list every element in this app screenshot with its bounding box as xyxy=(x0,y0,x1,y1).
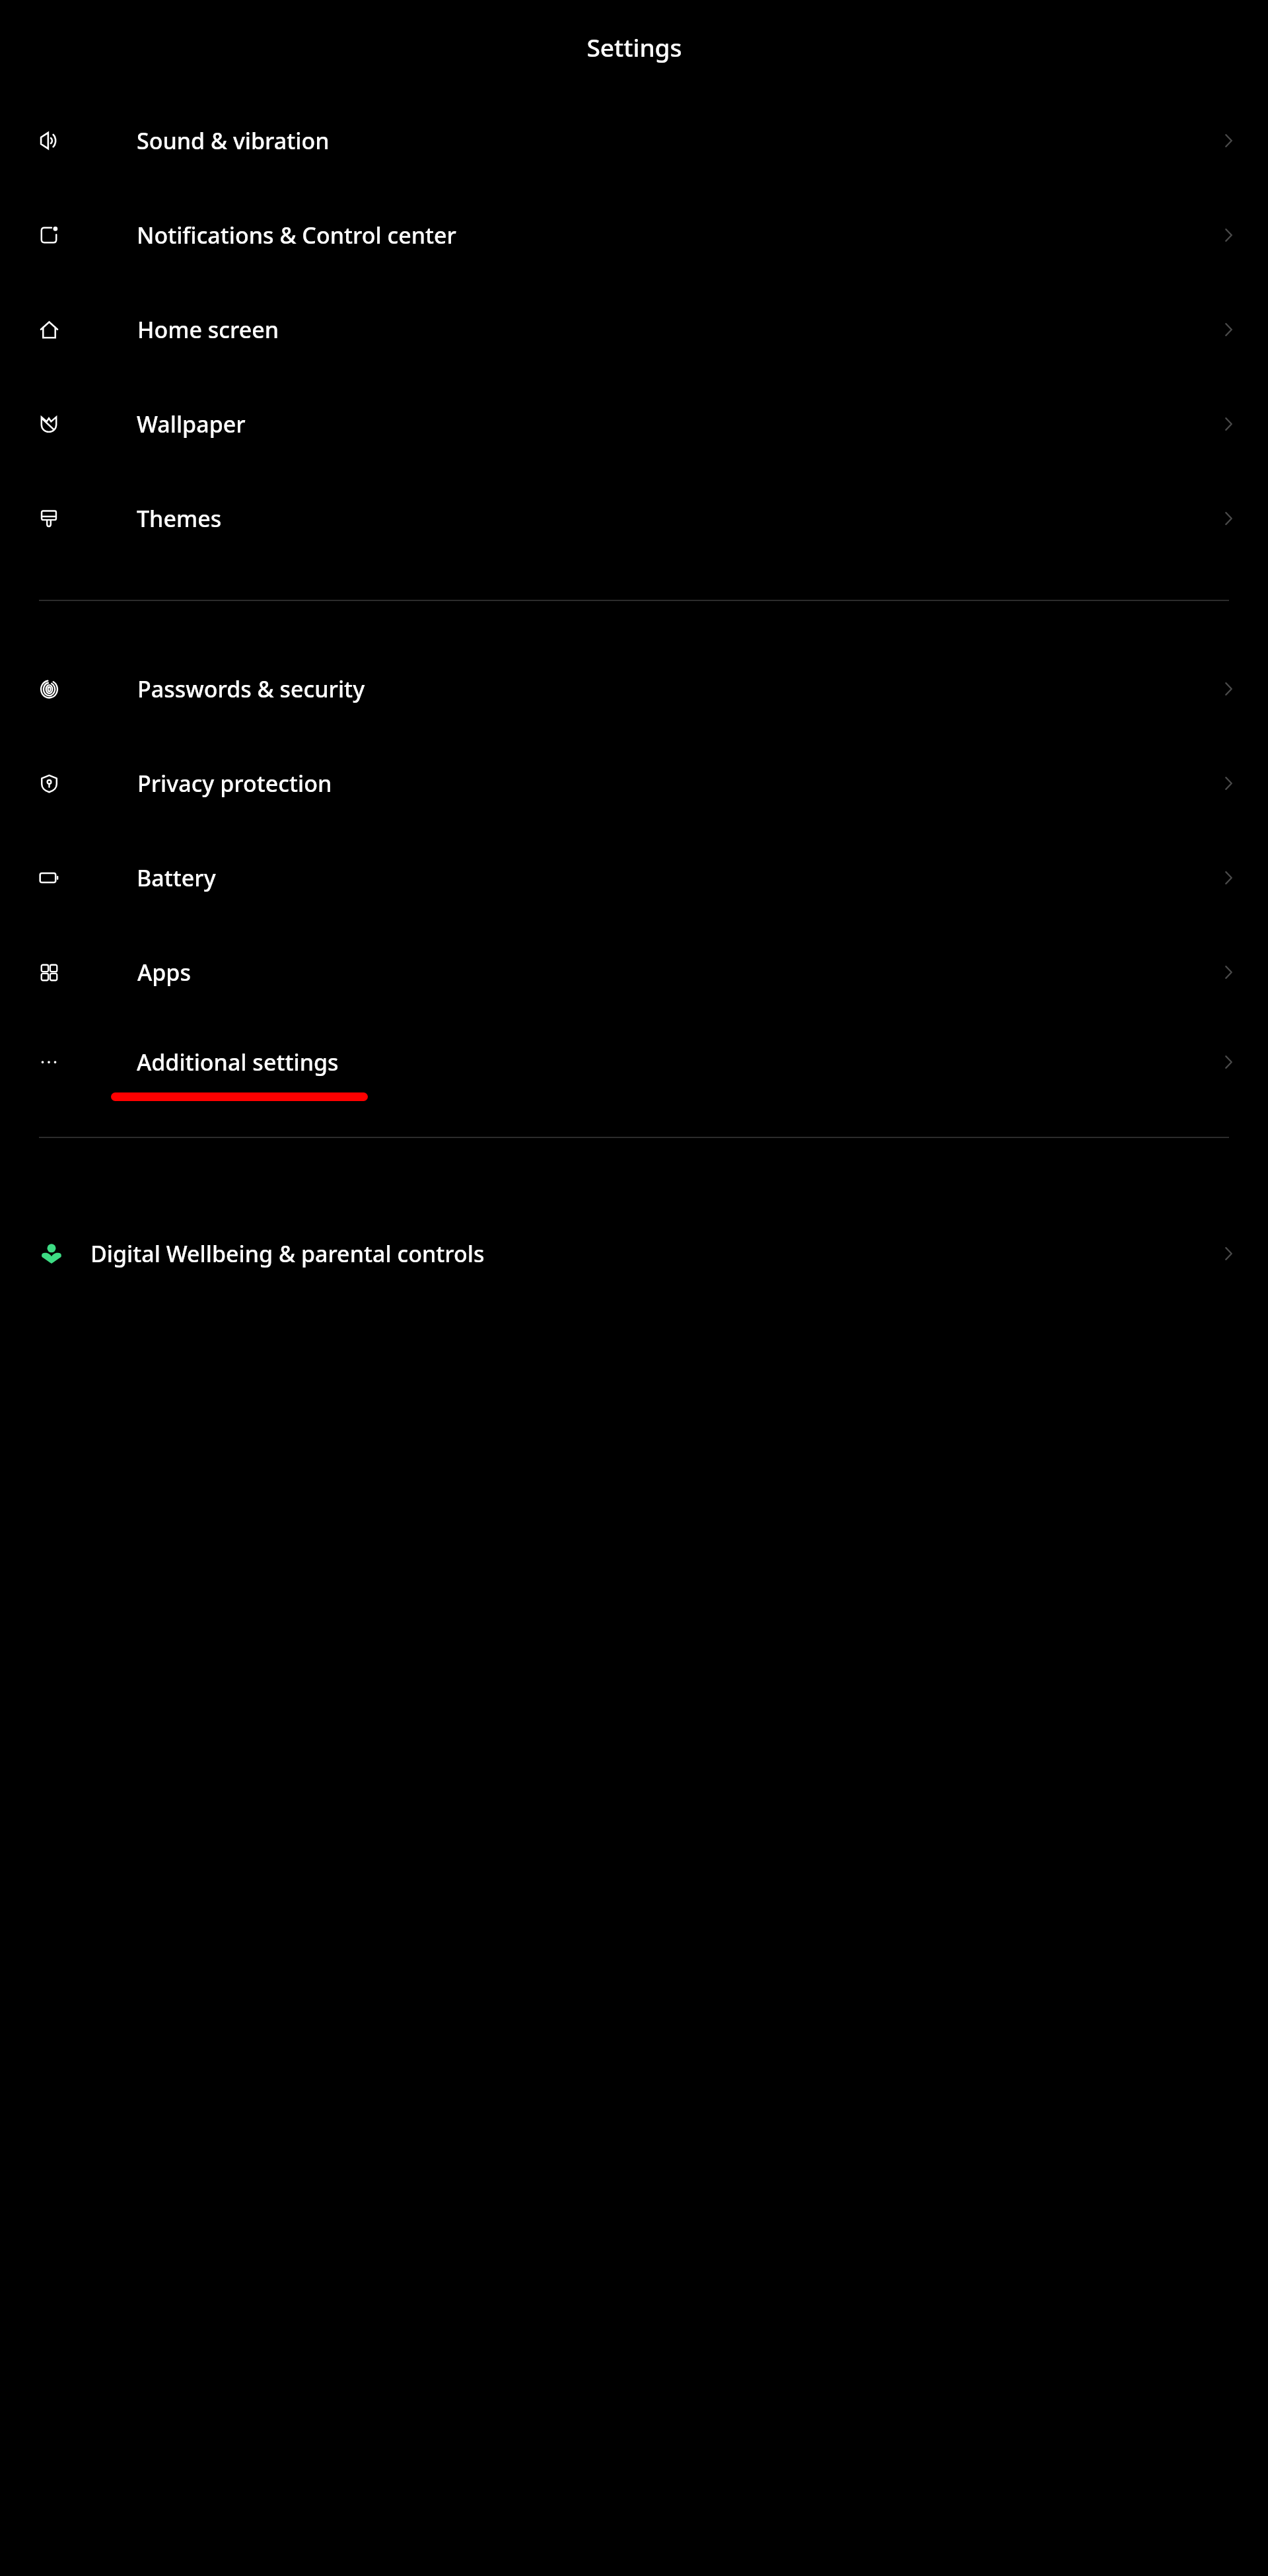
button[interactable]: Passwords & security xyxy=(0,666,1268,712)
other: Open Passwords & security xyxy=(1219,680,1238,698)
button[interactable]: Wallpaper xyxy=(0,401,1268,447)
other: Open Wallpaper xyxy=(1219,415,1238,433)
staticText: Privacy protection xyxy=(137,768,1203,799)
staticText: Settings xyxy=(586,30,682,63)
button[interactable]: Notifications & Control center xyxy=(0,212,1268,258)
staticText: Home screen xyxy=(137,314,1203,345)
other: Open Sound & vibration xyxy=(1219,131,1238,150)
staticText: Additional settings xyxy=(137,1047,1203,1077)
other: Open Themes xyxy=(1219,509,1238,528)
other: Open Home screen xyxy=(1219,320,1238,339)
button[interactable]: Themes xyxy=(0,495,1268,542)
button[interactable]: Digital Wellbeing & parental controls xyxy=(0,1217,1268,1290)
staticText: Wallpaper xyxy=(137,409,1203,439)
other: Open Privacy protection xyxy=(1219,774,1238,793)
button[interactable]: Battery xyxy=(0,855,1268,901)
button[interactable]: Apps xyxy=(0,949,1268,995)
staticText: Apps xyxy=(137,957,1203,987)
staticText: Passwords & security xyxy=(137,674,1203,704)
staticText: Digital Wellbeing & parental controls xyxy=(90,1238,1191,1269)
button[interactable]: Sound & vibration xyxy=(0,118,1268,164)
button[interactable]: Home screen xyxy=(0,306,1268,353)
other: Open Battery xyxy=(1219,869,1238,887)
staticText: Battery xyxy=(137,863,1203,893)
staticText: Notifications & Control center xyxy=(137,220,1203,250)
other: Open Apps xyxy=(1219,963,1238,982)
other: Open Digital Wellbeing and parental cont… xyxy=(1219,1244,1238,1263)
button[interactable]: Additional settings xyxy=(0,1039,1268,1085)
button[interactable]: Privacy protection xyxy=(0,760,1268,806)
other: Open Additional settings xyxy=(1219,1053,1238,1071)
other: Open Notifications & Control center xyxy=(1219,226,1238,244)
staticText: Sound & vibration xyxy=(137,125,1203,156)
staticText: Themes xyxy=(137,503,1203,534)
